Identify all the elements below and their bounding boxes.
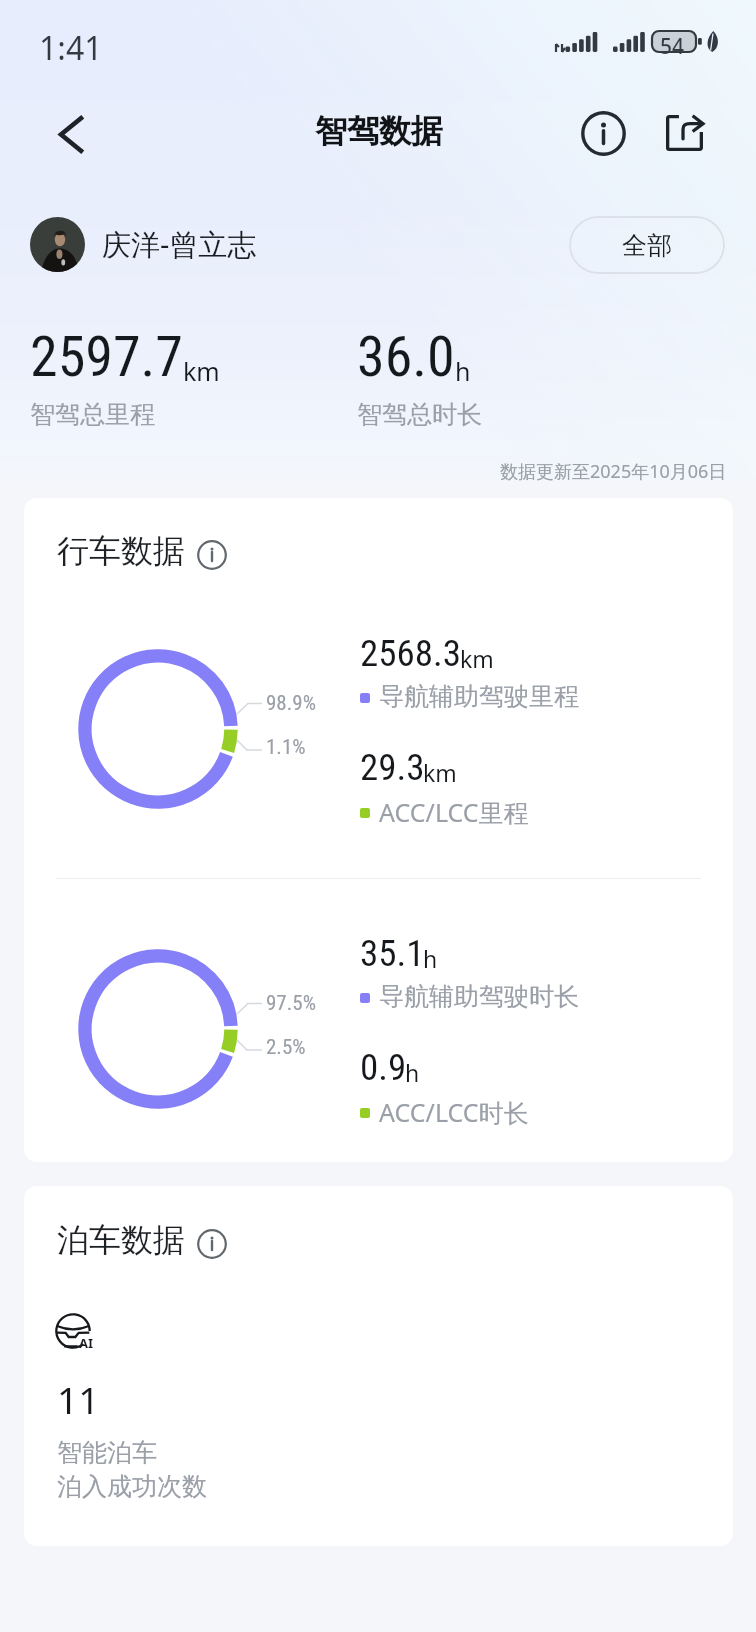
button[interactable]: 庆洋-曾立志 [30,217,257,272]
staticText: ACC/LCC时长 [379,1095,529,1129]
staticText: 54 [660,32,685,61]
staticText: 导航辅助驾驶里程 [379,681,579,712]
staticText: 数据更新至2025年10月06日 [500,459,727,484]
button[interactable]: 行车数据 [57,531,227,571]
staticText: 1:41 [39,26,103,70]
staticText: ACC/LCC里程 [379,795,529,829]
staticText: km [183,354,220,388]
staticText: h [455,354,471,388]
staticText: 1.1% [266,735,306,760]
staticText: 智驾数据 [315,111,443,151]
button[interactable]: Back [39,102,103,166]
staticText: 全部 [622,230,672,261]
staticText: 智驾总里程 [30,399,155,430]
staticText: km [423,757,457,788]
staticText: 97.5% [266,991,316,1016]
staticText: 导航辅助驾驶时长 [379,981,579,1012]
button[interactable]: Share [652,101,716,165]
button[interactable]: 泊车数据 [57,1220,227,1260]
staticText: 98.9% [266,691,316,716]
staticText: 2.5% [266,1035,306,1060]
staticText: km [460,643,494,674]
staticText: AI [79,1334,94,1352]
staticText: 35.1 [360,932,425,975]
button[interactable]: Info [571,101,635,165]
staticText: 0.9 [360,1046,407,1089]
staticText: 智能泊车 [57,1437,157,1468]
staticText: 泊车数据 [57,1220,185,1260]
staticText: 庆洋-曾立志 [102,224,257,264]
staticText: 行车数据 [57,531,185,571]
staticText: 智驾总时长 [357,399,482,430]
staticText: h [405,1057,420,1088]
staticText: 2597.7 [30,324,183,390]
staticText: 11 [57,1374,100,1424]
other: AI parking [46,1304,96,1354]
button[interactable]: 全部 [569,216,725,274]
staticText: 36.0 [357,324,455,390]
staticText: 2568.3 [360,632,462,675]
staticText: 泊入成功次数 [57,1471,207,1502]
staticText: 29.3 [360,746,425,789]
staticText: h [423,943,438,974]
